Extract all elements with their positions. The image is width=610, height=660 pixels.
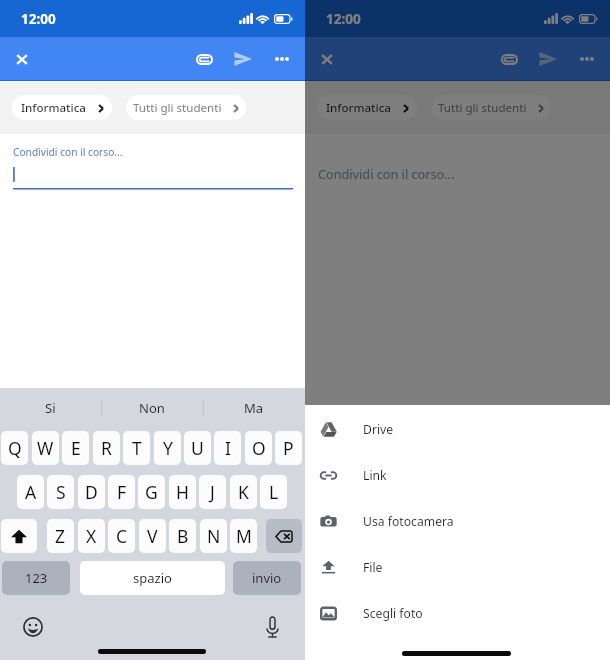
- button[interactable]: C: [108, 519, 135, 553]
- staticText: spazio: [133, 569, 172, 587]
- staticText: M: [236, 524, 252, 548]
- button[interactable]: H: [169, 475, 196, 509]
- staticText: invio: [252, 569, 282, 587]
- staticText: A: [25, 480, 37, 504]
- staticText: N: [207, 524, 221, 548]
- staticText: 12:00: [326, 10, 361, 28]
- staticText: Condividi con il corso...: [13, 145, 123, 159]
- button[interactable]: D: [78, 475, 105, 509]
- button[interactable]: Scegli foto: [305, 590, 610, 636]
- staticText: Informatica: [326, 100, 392, 116]
- button[interactable]: E: [62, 431, 89, 465]
- staticText: S: [56, 480, 66, 504]
- button[interactable]: A: [17, 475, 44, 509]
- button[interactable]: W: [32, 431, 59, 465]
- staticText: L: [269, 480, 279, 504]
- staticText: 12:00: [21, 10, 56, 28]
- staticText: R: [101, 436, 112, 460]
- staticText: Informatica: [21, 100, 87, 116]
- button[interactable]: Attach: [491, 41, 527, 77]
- staticText: Link: [363, 467, 387, 484]
- staticText: C: [116, 524, 128, 548]
- staticText: T: [132, 436, 142, 460]
- staticText: Usa fotocamera: [363, 513, 454, 530]
- staticText: Z: [55, 524, 66, 548]
- button[interactable]: Close: [309, 41, 345, 77]
- staticText: I: [225, 436, 231, 460]
- staticText: Y: [163, 436, 173, 460]
- button[interactable]: F: [108, 475, 135, 509]
- button[interactable]: Drive: [305, 406, 610, 452]
- button[interactable]: Shift: [1, 519, 37, 553]
- button[interactable]: B: [169, 519, 196, 553]
- staticText: Drive: [363, 421, 394, 438]
- staticText: G: [145, 480, 158, 504]
- button[interactable]: O: [245, 431, 272, 465]
- button[interactable]: Attach: [186, 41, 222, 77]
- button[interactable]: Tutti gli studenti: [431, 95, 551, 120]
- button[interactable]: K: [230, 475, 257, 509]
- button[interactable]: L: [260, 475, 287, 509]
- button[interactable]: T: [123, 431, 150, 465]
- button[interactable]: 123: [2, 561, 70, 595]
- staticText: U: [191, 436, 204, 460]
- staticText: Q: [8, 436, 22, 460]
- button[interactable]: Voice input: [256, 611, 288, 643]
- staticText: B: [177, 524, 189, 548]
- button[interactable]: S: [47, 475, 74, 509]
- staticText: Non: [139, 399, 165, 417]
- staticText: Si: [45, 399, 56, 417]
- staticText: H: [176, 480, 189, 504]
- button[interactable]: X: [78, 519, 105, 553]
- staticText: Tutti gli studenti: [133, 100, 222, 116]
- button[interactable]: G: [138, 475, 165, 509]
- staticText: X: [86, 524, 97, 548]
- button[interactable]: Close: [4, 41, 40, 77]
- staticText: Scegli foto: [363, 605, 423, 622]
- staticText: 123: [25, 569, 48, 587]
- staticText: Tutti gli studenti: [438, 100, 527, 116]
- button[interactable]: V: [139, 519, 166, 553]
- staticText: E: [71, 436, 81, 460]
- button[interactable]: Y: [154, 431, 181, 465]
- staticText: O: [252, 436, 266, 460]
- staticText: Condividi con il corso...: [318, 165, 455, 182]
- button[interactable]: J: [199, 475, 226, 509]
- button[interactable]: I: [214, 431, 241, 465]
- button[interactable]: Z: [47, 519, 74, 553]
- button[interactable]: Informatica: [317, 95, 417, 120]
- staticText: J: [210, 480, 215, 504]
- staticText: F: [117, 480, 127, 504]
- button[interactable]: Usa fotocamera: [305, 498, 610, 544]
- staticText: K: [238, 480, 249, 504]
- button[interactable]: Si: [0, 388, 101, 428]
- button[interactable]: Tutti gli studenti: [126, 95, 246, 120]
- staticText: P: [283, 436, 294, 460]
- button[interactable]: M: [230, 519, 257, 553]
- button[interactable]: Q: [1, 431, 28, 465]
- button[interactable]: spazio: [80, 561, 225, 595]
- button[interactable]: Link: [305, 452, 610, 498]
- button[interactable]: Emoji: [17, 611, 49, 643]
- button[interactable]: Informatica: [12, 95, 112, 120]
- button[interactable]: invio: [233, 561, 301, 595]
- button[interactable]: More options: [569, 41, 605, 77]
- button[interactable]: Backspace: [266, 519, 302, 553]
- button[interactable]: Ma: [203, 388, 305, 428]
- staticText: D: [85, 480, 98, 504]
- staticText: Ma: [244, 399, 264, 417]
- button[interactable]: U: [184, 431, 211, 465]
- button[interactable]: P: [275, 431, 302, 465]
- button[interactable]: Send: [225, 41, 261, 77]
- button[interactable]: File: [305, 544, 610, 590]
- staticText: V: [147, 524, 158, 548]
- staticText: File: [363, 559, 383, 576]
- button[interactable]: More options: [264, 41, 300, 77]
- button[interactable]: Non: [101, 388, 203, 428]
- button[interactable]: N: [200, 519, 227, 553]
- button[interactable]: R: [93, 431, 120, 465]
- staticText: W: [37, 436, 54, 460]
- button[interactable]: Send: [530, 41, 566, 77]
